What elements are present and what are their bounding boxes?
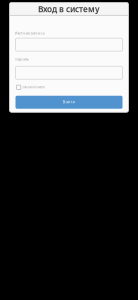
staticText: Вход в систему: [38, 3, 100, 15]
staticText: Войти: [62, 99, 75, 104]
staticText: Пароль: [14, 56, 28, 62]
staticText: Запомнить меня: [22, 85, 45, 89]
button[interactable]: Запомнить меня: [15, 85, 122, 90]
button[interactable]: Войти: [15, 96, 122, 109]
staticText: Учетная запись: [14, 30, 44, 36]
